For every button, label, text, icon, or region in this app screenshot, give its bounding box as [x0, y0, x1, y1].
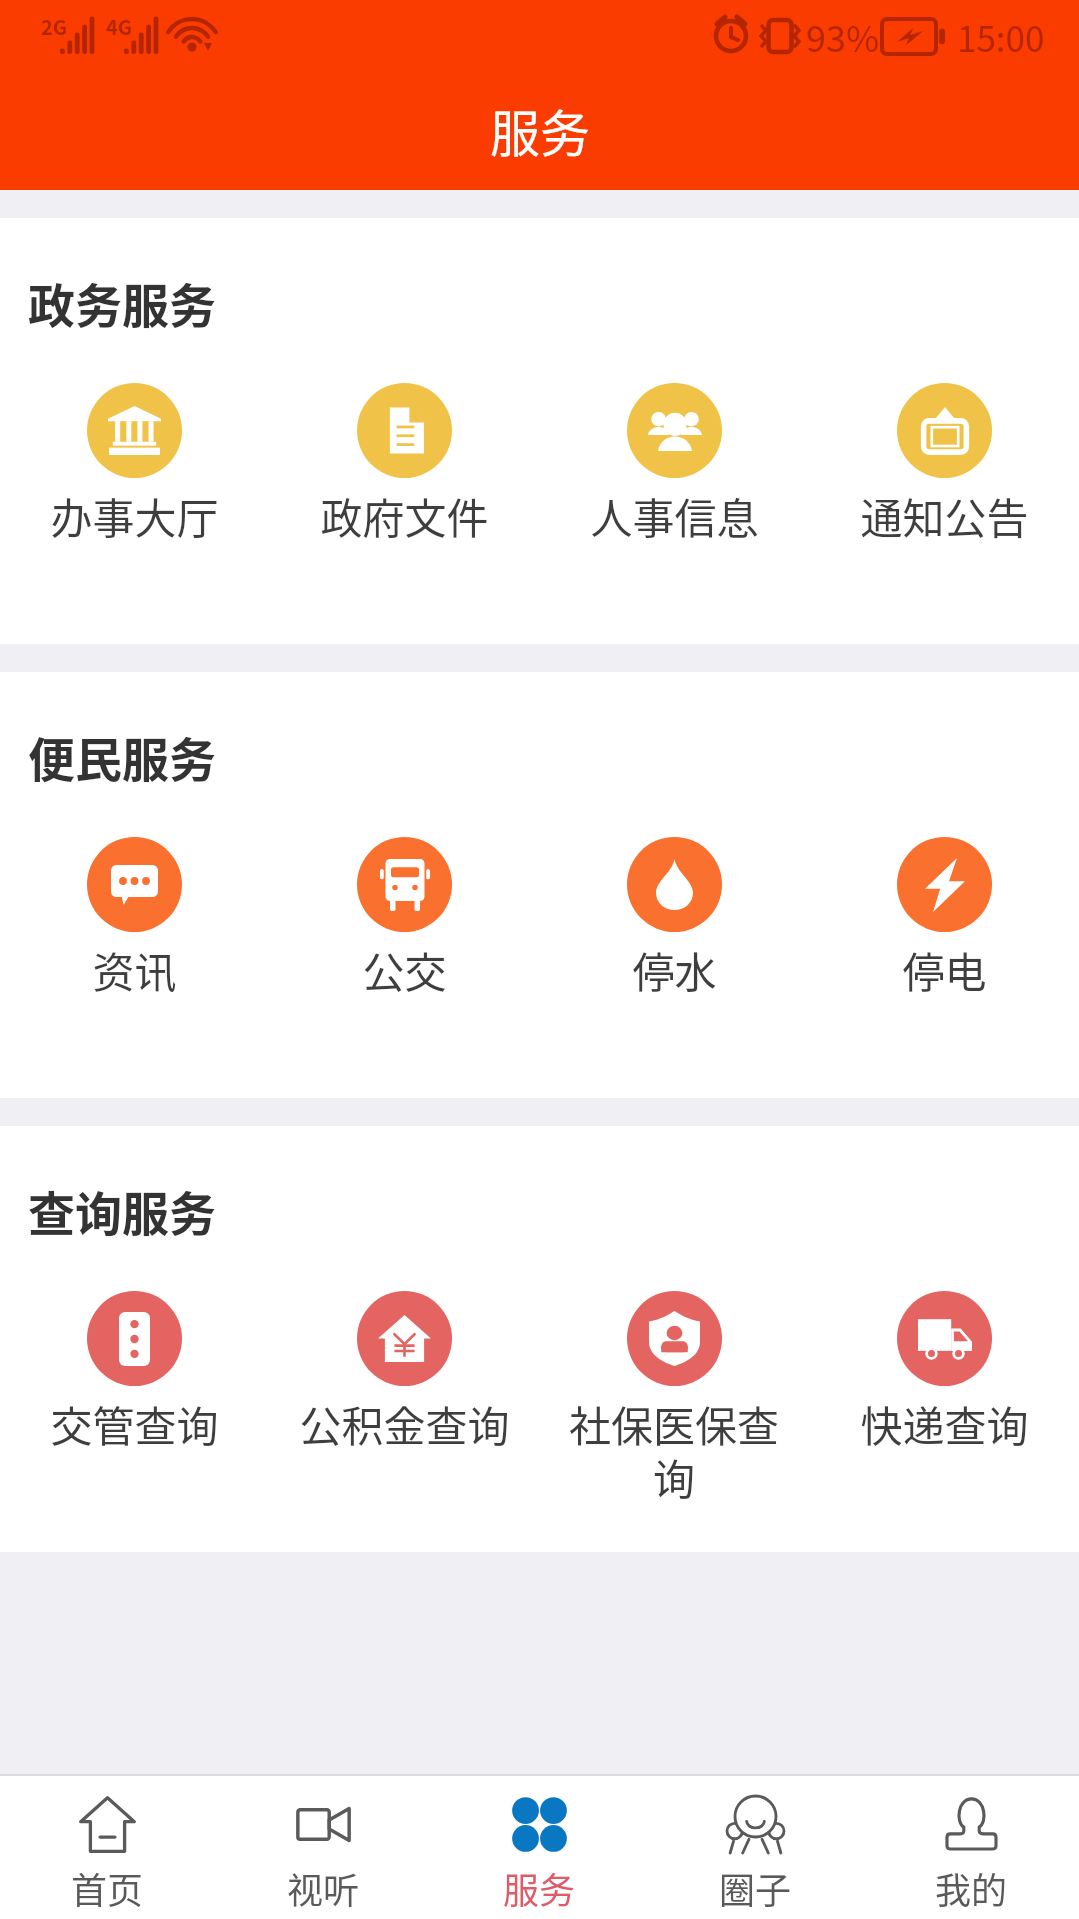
- staticText: 人事信息: [590, 485, 759, 546]
- staticText: 4G: [106, 12, 133, 41]
- button[interactable]: 公交: [269, 837, 539, 1000]
- staticText: 视听: [287, 1862, 360, 1914]
- staticText: 首页: [71, 1862, 144, 1914]
- staticText: 圈子: [719, 1862, 792, 1914]
- staticText: 公积金查询: [299, 1393, 510, 1454]
- staticText: 便民服务: [28, 722, 216, 790]
- button[interactable]: 公积金查询: [269, 1291, 539, 1454]
- staticText: 快递查询: [860, 1393, 1029, 1454]
- button[interactable]: 首页: [0, 1776, 215, 1919]
- staticText: 政府文件: [320, 485, 489, 546]
- button[interactable]: 视听: [215, 1776, 431, 1919]
- button[interactable]: 停水: [539, 837, 809, 1000]
- staticText: 服务: [490, 94, 590, 166]
- staticText: 我的: [935, 1862, 1008, 1914]
- staticText: 15:00: [957, 11, 1045, 62]
- staticText: 停电: [902, 939, 987, 1000]
- button[interactable]: 快递查询: [809, 1291, 1079, 1454]
- button[interactable]: 我的: [863, 1776, 1079, 1919]
- button[interactable]: 政府文件: [269, 383, 539, 546]
- staticText: 社保医保查询: [549, 1393, 799, 1507]
- staticText: 2G: [41, 12, 68, 41]
- button[interactable]: 通知公告: [809, 383, 1079, 546]
- staticText: 93%: [806, 10, 880, 62]
- staticText: 办事大厅: [50, 485, 219, 546]
- staticText: 交管查询: [50, 1393, 219, 1454]
- staticText: 停水: [632, 939, 717, 1000]
- button[interactable]: 人事信息: [539, 383, 809, 546]
- button[interactable]: 服务: [431, 1776, 647, 1919]
- button[interactable]: 停电: [809, 837, 1079, 1000]
- staticText: 资讯: [92, 939, 177, 1000]
- button[interactable]: 资讯: [0, 837, 269, 1000]
- button[interactable]: 交管查询: [0, 1291, 269, 1454]
- staticText: 服务: [503, 1862, 576, 1914]
- button[interactable]: 社保医保查询: [539, 1291, 809, 1507]
- button[interactable]: 圈子: [647, 1776, 863, 1919]
- staticText: 政务服务: [28, 268, 216, 336]
- staticText: 通知公告: [860, 485, 1029, 546]
- button[interactable]: 办事大厅: [0, 383, 269, 546]
- staticText: 公交: [362, 939, 447, 1000]
- staticText: 查询服务: [28, 1176, 216, 1244]
